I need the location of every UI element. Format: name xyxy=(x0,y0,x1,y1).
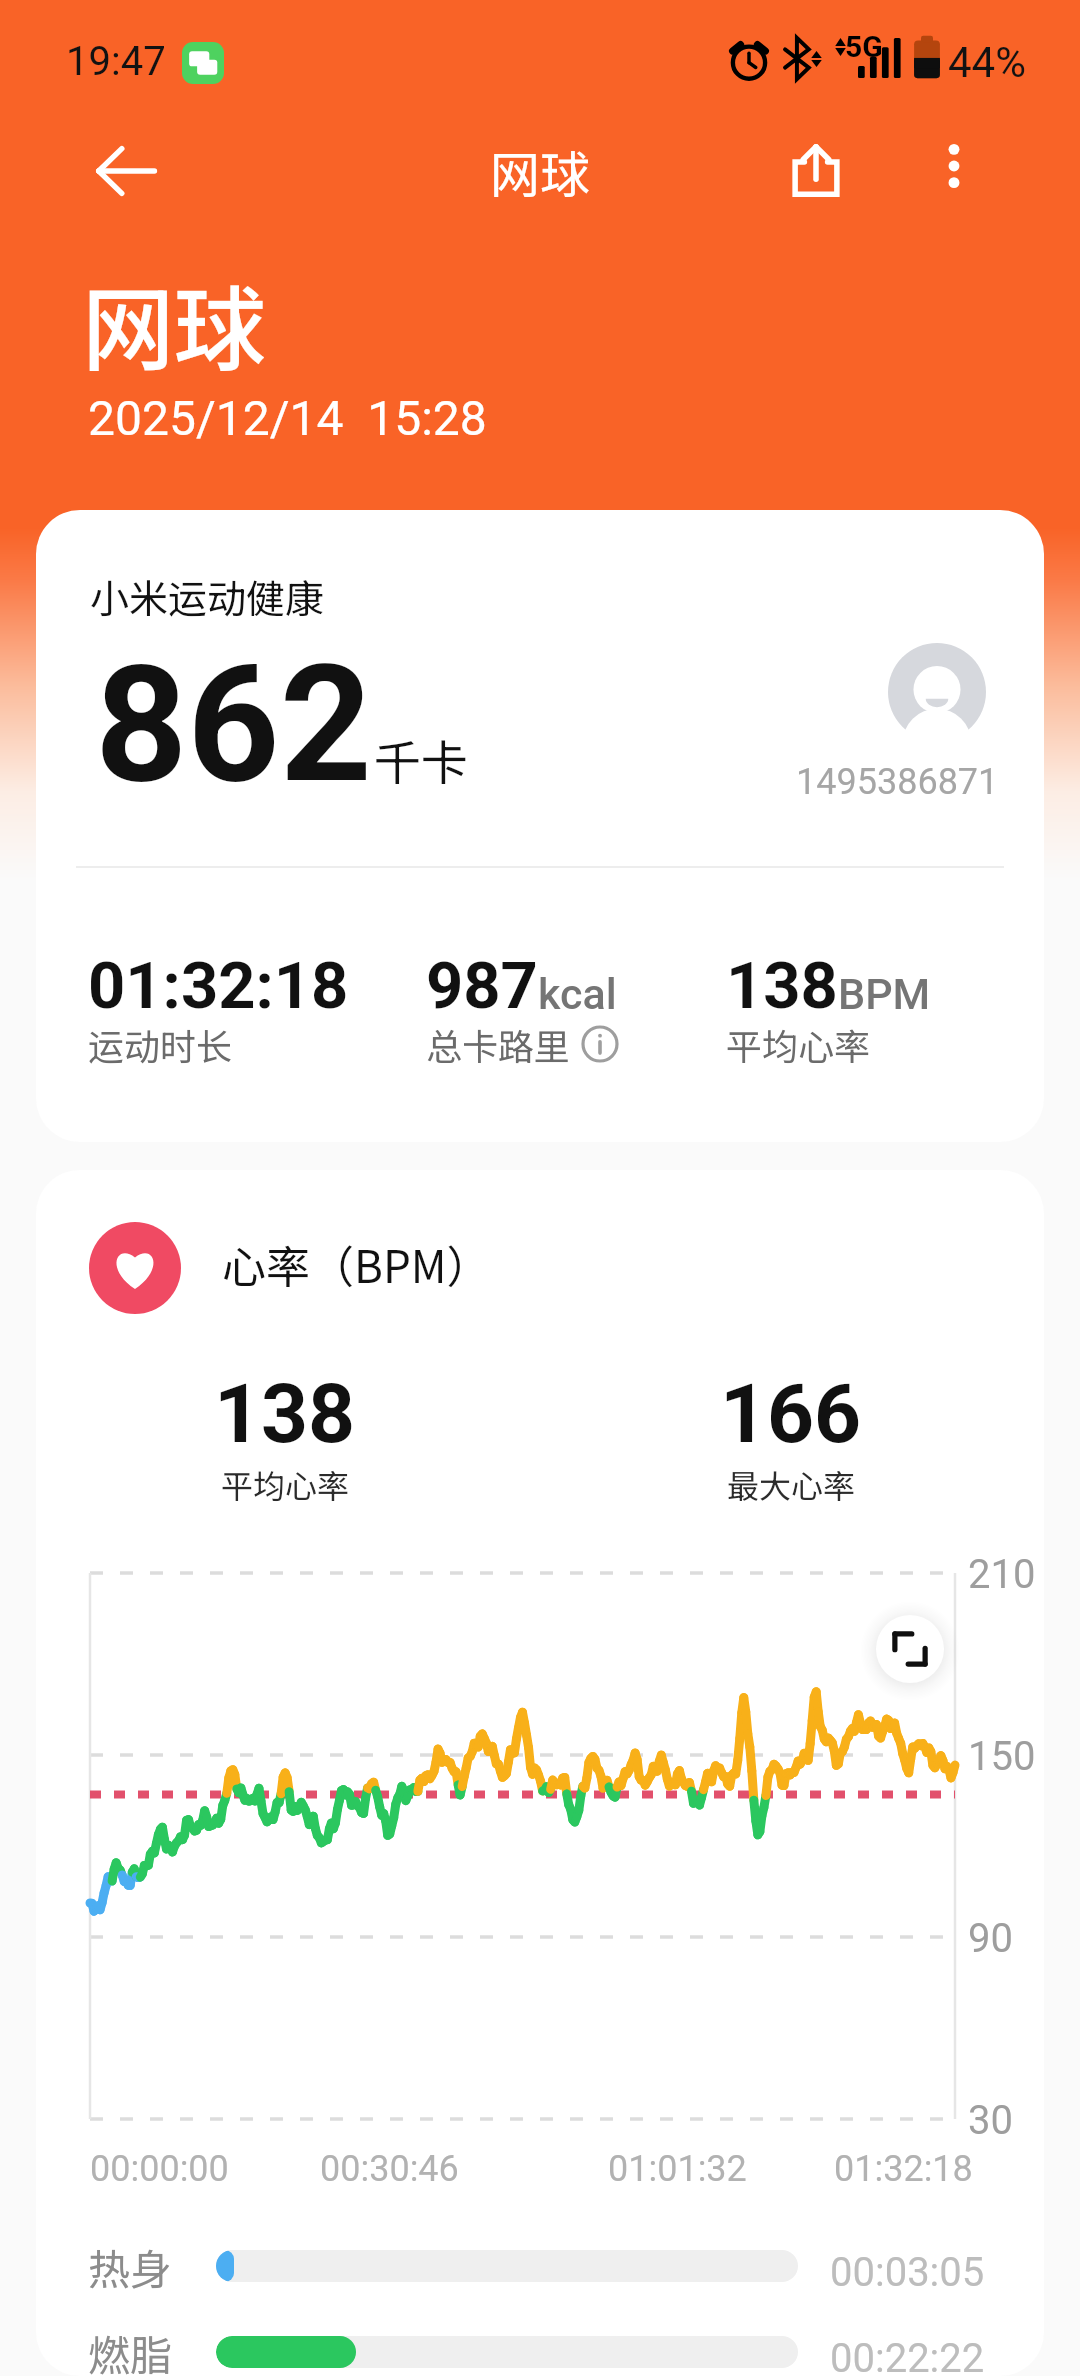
staticText: 44% xyxy=(948,38,1026,87)
staticText: kcal xyxy=(538,969,617,1019)
button[interactable]: Back xyxy=(70,116,180,226)
staticText: 210 xyxy=(968,1551,1036,1598)
button[interactable]: More options xyxy=(904,116,1004,216)
staticText: 862 xyxy=(95,631,373,820)
staticText: 90 xyxy=(968,1915,1013,1962)
staticText: 30 xyxy=(968,2097,1013,2144)
button[interactable]: 小米运动健康 xyxy=(36,510,1044,1142)
staticText: 987 xyxy=(426,948,538,1024)
staticText: 1495386871 xyxy=(796,761,999,803)
staticText: 平均心率 xyxy=(726,1018,871,1070)
staticText: 心率（BPM） xyxy=(222,1232,491,1296)
staticText: BPM xyxy=(838,969,931,1019)
staticText: 燃脂 xyxy=(88,2322,173,2376)
staticText: 小米运动健康 xyxy=(90,568,325,624)
staticText: 总卡路里 xyxy=(426,1018,571,1070)
button[interactable]: Expand chart xyxy=(860,1599,960,1699)
staticText: 00:22:22 xyxy=(830,2335,985,2376)
staticText: 网球 xyxy=(82,256,267,389)
staticText: 千卡 xyxy=(374,725,468,793)
staticText: 00:03:05 xyxy=(830,2249,985,2296)
staticText: 150 xyxy=(968,1733,1036,1780)
staticText: 网球 xyxy=(490,135,590,207)
staticText: 01:32:18 xyxy=(88,948,349,1024)
staticText: 热身 xyxy=(88,2236,173,2297)
staticText: 00:00:00 xyxy=(90,2148,229,2190)
staticText: 138 xyxy=(726,948,838,1024)
staticText: 166 xyxy=(720,1366,862,1462)
staticText: 01:01:32 xyxy=(608,2148,747,2190)
staticText: 运动时长 xyxy=(88,1018,233,1070)
staticText: 00:30:46 xyxy=(320,2148,459,2190)
staticText: 5G xyxy=(845,29,883,64)
staticText: 最大心率 xyxy=(727,1461,856,1507)
staticText: 01:32:18 xyxy=(834,2148,973,2190)
staticText: 138 xyxy=(214,1366,356,1462)
button[interactable]: Share xyxy=(762,116,870,224)
staticText: 平均心率 xyxy=(221,1461,350,1507)
staticText: 19:47 xyxy=(66,38,166,85)
staticText: 2025/12/14 15:28 xyxy=(88,390,487,446)
